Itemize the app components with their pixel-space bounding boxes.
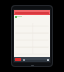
button[interactable]: Record xyxy=(15,58,21,61)
button[interactable] xyxy=(14,10,50,15)
button[interactable] xyxy=(14,15,50,18)
button[interactable]: Settings xyxy=(47,59,49,61)
